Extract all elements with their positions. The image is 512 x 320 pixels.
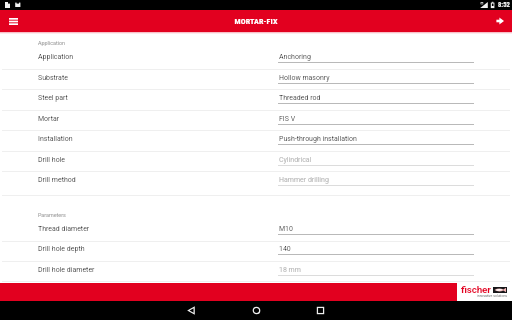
- staticText: FIS V: [279, 115, 296, 123]
- staticText: Drill hole depth: [38, 245, 85, 253]
- staticText: Substrate: [38, 74, 68, 82]
- staticText: Mortar: [38, 115, 60, 123]
- button[interactable]: Recent apps: [304, 301, 336, 320]
- staticText: Cylindrical: [279, 156, 312, 164]
- button[interactable]: Steel part: [0, 89, 512, 110]
- staticText: Hammer drilling: [279, 176, 329, 184]
- staticText: 140: [279, 245, 291, 253]
- staticText: Application: [38, 53, 74, 61]
- staticText: 18 mm: [279, 266, 301, 274]
- staticText: Steel part: [38, 94, 68, 102]
- button[interactable]: Mortar: [0, 110, 512, 131]
- button[interactable]: Open navigation menu: [0, 10, 26, 32]
- button[interactable]: Installation: [0, 130, 512, 151]
- staticText: innovative solutions: [477, 294, 508, 298]
- staticText: Drill hole: [38, 156, 66, 164]
- staticText: fischer: [461, 284, 491, 296]
- staticText: Hollow masonry: [279, 74, 330, 82]
- staticText: Drill method: [38, 176, 76, 184]
- staticText: 8:52: [498, 1, 510, 9]
- staticText: M10: [279, 225, 293, 233]
- button[interactable]: Drill hole depth: [0, 240, 512, 261]
- button[interactable]: Home: [240, 301, 272, 320]
- button[interactable]: Drill hole: [0, 151, 512, 172]
- staticText: Thread diameter: [38, 225, 90, 233]
- button[interactable]: Next: [488, 10, 512, 32]
- button[interactable]: Back: [175, 301, 207, 320]
- button[interactable]: Drill method: [0, 171, 512, 192]
- staticText: Application: [38, 40, 66, 46]
- staticText: Push-through installation: [279, 135, 357, 143]
- button[interactable]: fischer innovative solutions: [457, 283, 512, 301]
- button[interactable]: Thread diameter: [0, 220, 512, 241]
- staticText: MORTAR-FIX: [234, 17, 278, 26]
- staticText: Parameters: [38, 212, 66, 218]
- button[interactable]: Application: [0, 48, 512, 69]
- staticText: Installation: [38, 135, 73, 143]
- button[interactable]: Drill hole diameter: [0, 261, 512, 282]
- staticText: Anchoring: [279, 53, 311, 61]
- staticText: Drill hole diameter: [38, 266, 95, 274]
- staticText: Threaded rod: [279, 94, 321, 102]
- button[interactable]: Substrate: [0, 69, 512, 90]
